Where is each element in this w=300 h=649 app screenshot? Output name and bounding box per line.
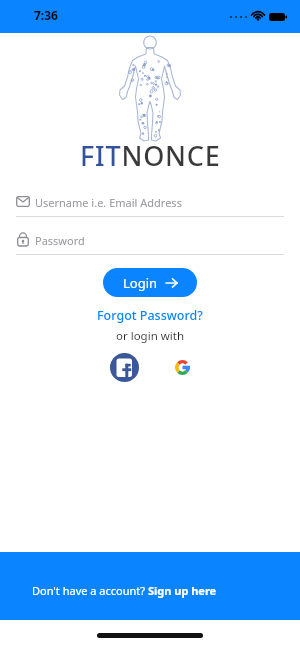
staticText: or login with: [116, 328, 185, 344]
staticText: Don't have a account? Sign up here: [32, 583, 217, 598]
staticText: FITNONCE: [80, 137, 221, 174]
staticText: Login: [123, 274, 158, 292]
staticText: Username i.e. Email Address: [35, 195, 182, 210]
staticText: Forgot Password?: [97, 307, 203, 324]
staticText: 7:36: [34, 7, 58, 23]
staticText: Password: [35, 233, 85, 248]
